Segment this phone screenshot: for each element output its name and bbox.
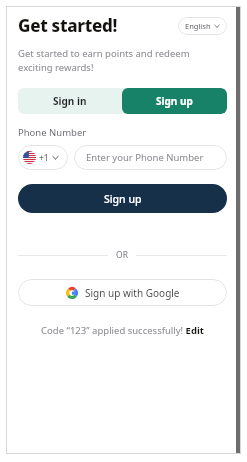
staticText: English bbox=[185, 21, 211, 31]
staticText: Sign up bbox=[104, 192, 142, 206]
button[interactable]: Sign up bbox=[122, 88, 227, 114]
button[interactable]: Select country code bbox=[18, 145, 68, 170]
staticText: Get started! bbox=[18, 14, 118, 37]
staticText: Sign up bbox=[156, 94, 193, 108]
staticText: Phone Number bbox=[18, 126, 87, 139]
staticText: OR bbox=[116, 249, 128, 261]
staticText: Code “123” applied successfully! Edit bbox=[41, 324, 204, 337]
button[interactable]: Sign up with Google bbox=[18, 279, 227, 306]
button[interactable]: Change language bbox=[178, 17, 227, 35]
button[interactable]: Sign in bbox=[18, 88, 122, 114]
staticText: Enter your Phone Number bbox=[86, 151, 204, 164]
button[interactable]: Enter your Phone Number bbox=[74, 145, 227, 170]
staticText: Sign in bbox=[53, 94, 87, 108]
button[interactable]: Sign up bbox=[18, 184, 227, 213]
staticText: Sign up with Google bbox=[85, 286, 180, 300]
staticText: Get started to earn points and redeem ex… bbox=[18, 47, 190, 74]
staticText: +1 bbox=[39, 152, 49, 164]
